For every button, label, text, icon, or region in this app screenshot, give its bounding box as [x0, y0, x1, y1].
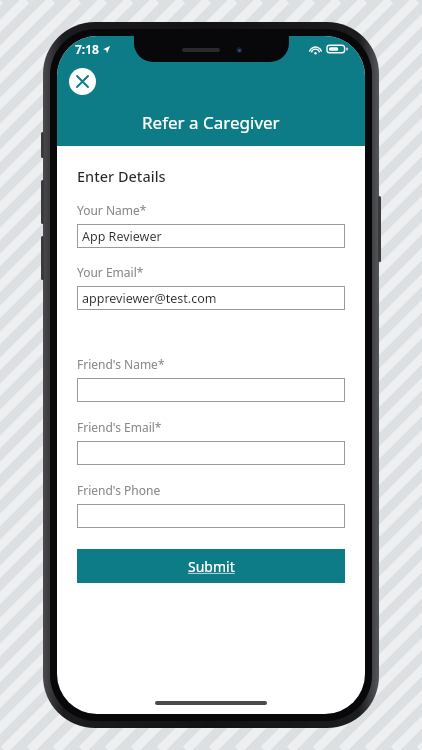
button[interactable]: Close [69, 68, 96, 95]
staticText: appreviewer@test.com [82, 290, 217, 307]
staticText: Submit [188, 557, 235, 576]
staticText: 7:18 [75, 41, 99, 57]
staticText: Refer a Caregiver [142, 111, 280, 134]
staticText: Enter Details [77, 166, 166, 186]
staticText: Your Name* [77, 202, 147, 218]
button[interactable]: App Reviewer [77, 224, 345, 248]
button[interactable]: appreviewer@test.com [77, 286, 345, 310]
staticText: Friend's Phone [77, 482, 161, 498]
button[interactable] [77, 378, 345, 402]
staticText: Friend's Name* [77, 356, 165, 372]
button[interactable]: Submit [77, 549, 345, 583]
button[interactable] [77, 504, 345, 528]
button[interactable] [77, 441, 345, 465]
staticText: Friend's Email* [77, 419, 162, 435]
staticText: App Reviewer [82, 228, 162, 245]
staticText: Your Email* [77, 264, 144, 280]
